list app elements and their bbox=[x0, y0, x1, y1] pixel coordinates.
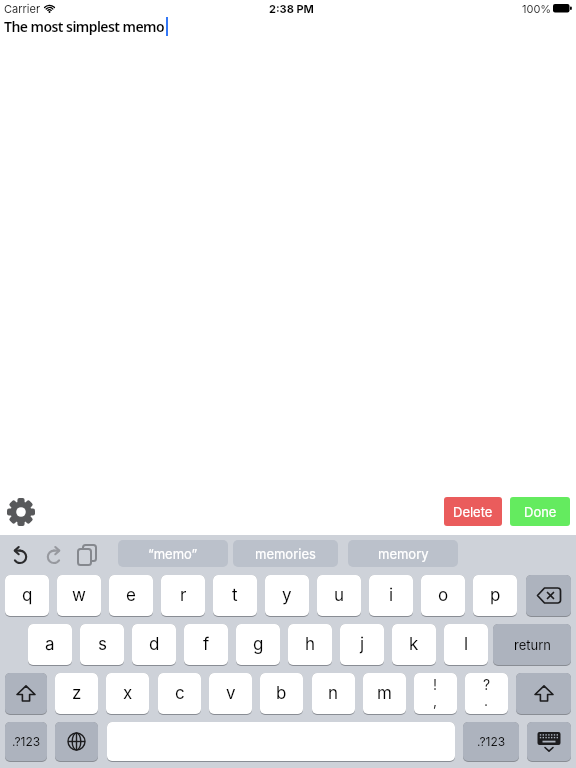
button[interactable]: f bbox=[184, 624, 228, 666]
button[interactable]: z bbox=[55, 673, 98, 715]
staticText: . bbox=[484, 692, 489, 709]
button[interactable]: r bbox=[161, 575, 205, 617]
button[interactable]: q bbox=[5, 575, 49, 617]
staticText: k bbox=[409, 634, 419, 655]
staticText: y bbox=[282, 585, 292, 606]
staticText: z bbox=[72, 683, 82, 704]
staticText: “memo” bbox=[148, 546, 198, 562]
staticText: p bbox=[490, 585, 501, 606]
staticText: 100% bbox=[522, 2, 552, 15]
staticText: t bbox=[232, 585, 238, 606]
button[interactable]: n bbox=[312, 673, 355, 715]
button[interactable]: u bbox=[317, 575, 361, 617]
staticText: j bbox=[360, 634, 365, 655]
staticText: o bbox=[438, 585, 449, 606]
button[interactable]: v bbox=[209, 673, 252, 715]
button[interactable]: m bbox=[363, 673, 406, 715]
button[interactable]: memories bbox=[233, 540, 338, 567]
staticText: memories bbox=[255, 546, 316, 562]
button[interactable]: k bbox=[392, 624, 436, 666]
button[interactable]: e bbox=[109, 575, 153, 617]
button[interactable]: g bbox=[236, 624, 280, 666]
staticText: Done bbox=[524, 504, 557, 520]
staticText: x bbox=[123, 683, 133, 704]
button[interactable]: y bbox=[265, 575, 309, 617]
button[interactable] bbox=[77, 544, 99, 566]
button[interactable]: ? bbox=[465, 673, 508, 715]
button[interactable] bbox=[9, 546, 31, 566]
button[interactable]: .?123 bbox=[5, 722, 47, 762]
staticText: f bbox=[203, 634, 210, 655]
button[interactable] bbox=[516, 673, 571, 715]
staticText: q bbox=[22, 585, 33, 606]
staticText: ? bbox=[483, 676, 491, 693]
staticText: h bbox=[305, 634, 316, 655]
staticText: return bbox=[514, 637, 551, 653]
button[interactable]: j bbox=[340, 624, 384, 666]
button[interactable]: b bbox=[260, 673, 303, 715]
staticText: The most simplest memo bbox=[4, 17, 165, 36]
staticText: n bbox=[328, 683, 339, 704]
staticText: r bbox=[180, 585, 187, 606]
staticText: .?123 bbox=[12, 734, 41, 749]
button[interactable]: s bbox=[80, 624, 124, 666]
button[interactable]: a bbox=[28, 624, 72, 666]
staticText: u bbox=[334, 585, 345, 606]
staticText: , bbox=[433, 692, 438, 709]
button[interactable]: c bbox=[158, 673, 201, 715]
button[interactable]: l bbox=[444, 624, 488, 666]
staticText: memory bbox=[378, 546, 429, 562]
staticText: l bbox=[464, 634, 469, 655]
button[interactable]: “memo” bbox=[118, 540, 228, 567]
button[interactable] bbox=[526, 575, 571, 617]
staticText: e bbox=[126, 585, 136, 606]
button[interactable]: i bbox=[369, 575, 413, 617]
staticText: 2:38 PM bbox=[269, 2, 314, 15]
staticText: Carrier bbox=[4, 2, 41, 15]
button[interactable]: Delete bbox=[444, 497, 502, 526]
button[interactable]: Done bbox=[510, 497, 570, 526]
button[interactable] bbox=[107, 722, 455, 762]
button[interactable]: t bbox=[213, 575, 257, 617]
staticText: a bbox=[45, 634, 55, 655]
button[interactable] bbox=[43, 546, 65, 566]
button[interactable]: x bbox=[106, 673, 149, 715]
staticText: b bbox=[276, 683, 287, 704]
staticText: d bbox=[149, 634, 160, 655]
staticText: Delete bbox=[453, 504, 493, 520]
staticText: m bbox=[377, 683, 392, 704]
staticText: w bbox=[72, 585, 86, 606]
staticText: i bbox=[389, 585, 394, 606]
button[interactable] bbox=[5, 673, 47, 715]
staticText: .?123 bbox=[477, 734, 506, 749]
button[interactable]: h bbox=[288, 624, 332, 666]
staticText: c bbox=[175, 683, 185, 704]
staticText: v bbox=[226, 683, 236, 704]
button[interactable]: p bbox=[473, 575, 517, 617]
button[interactable]: ! bbox=[414, 673, 457, 715]
button[interactable] bbox=[7, 498, 35, 526]
button[interactable] bbox=[527, 722, 571, 762]
button[interactable] bbox=[55, 722, 98, 762]
button[interactable]: d bbox=[132, 624, 176, 666]
button[interactable]: .?123 bbox=[463, 722, 519, 762]
button[interactable]: memory bbox=[348, 540, 458, 567]
button[interactable]: return bbox=[493, 624, 571, 666]
staticText: g bbox=[253, 634, 264, 655]
staticText: ! bbox=[433, 676, 438, 693]
button[interactable]: w bbox=[57, 575, 101, 617]
staticText: s bbox=[98, 634, 107, 655]
button[interactable]: o bbox=[421, 575, 465, 617]
